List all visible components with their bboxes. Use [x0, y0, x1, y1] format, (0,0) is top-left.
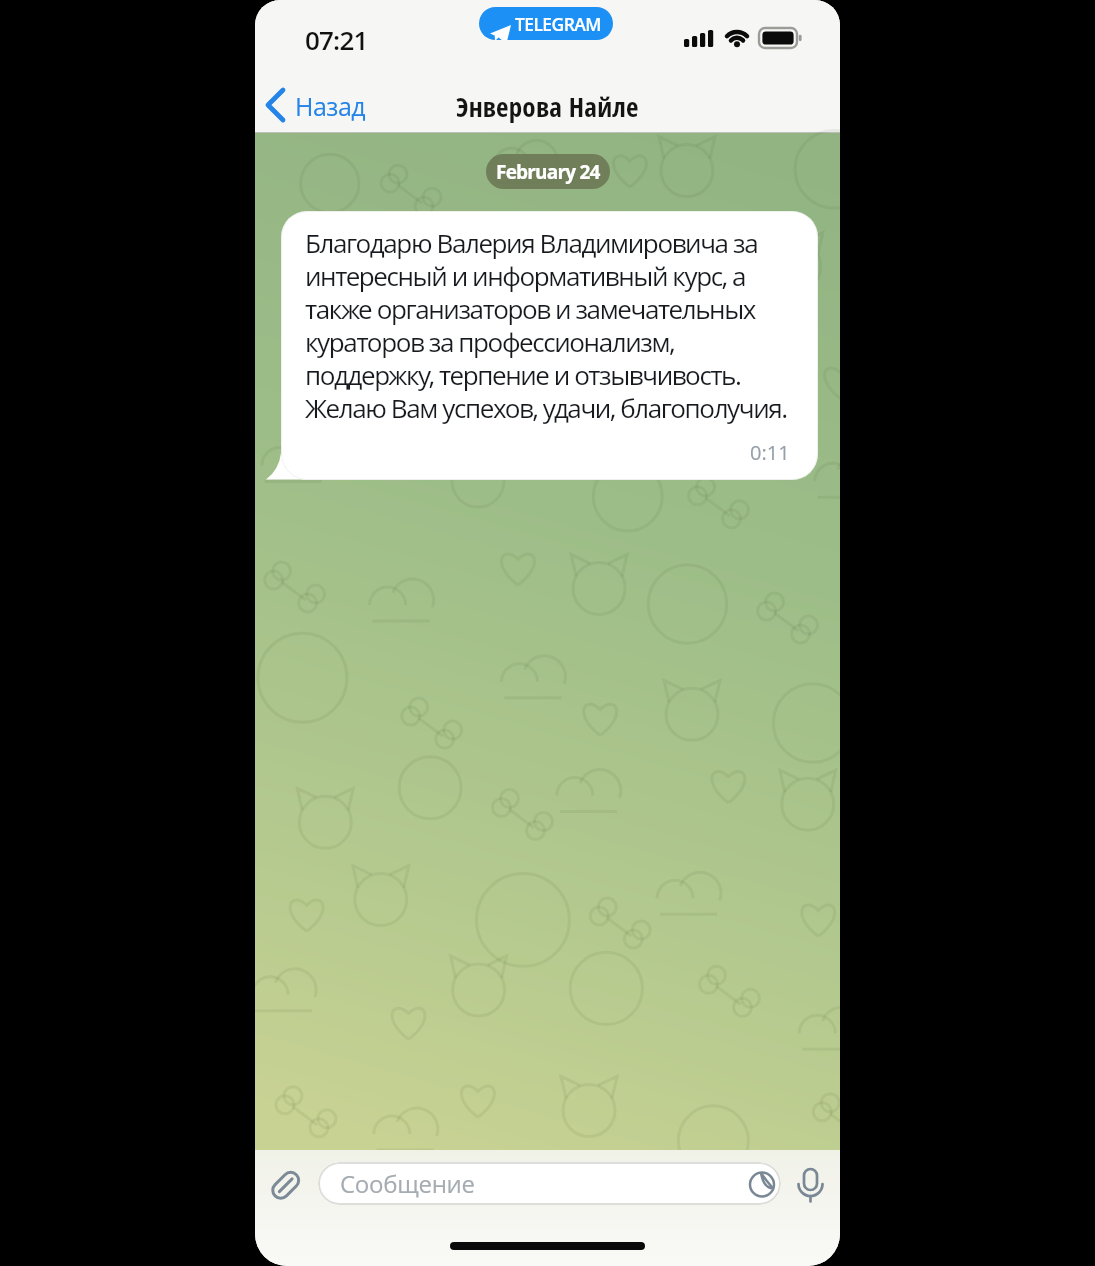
- button[interactable]: Назад: [295, 86, 385, 126]
- staticText: Назад: [295, 89, 366, 123]
- staticText: February 24: [496, 159, 600, 185]
- button[interactable]: TELEGRAM: [479, 7, 613, 40]
- staticText: TELEGRAM: [515, 12, 601, 36]
- staticText: Благодарю Валерия Владимировича за интер…: [305, 225, 787, 426]
- staticText: 0:11: [750, 439, 790, 466]
- staticText: Энверова Найле: [456, 88, 639, 125]
- button[interactable]: Благодарю Валерия Владимировича за интер…: [281, 211, 818, 480]
- staticText: Сообщение: [340, 1167, 475, 1200]
- button[interactable]: Сообщение: [318, 1162, 781, 1205]
- button[interactable]: February 24: [486, 154, 610, 189]
- staticText: 07:21: [305, 22, 368, 57]
